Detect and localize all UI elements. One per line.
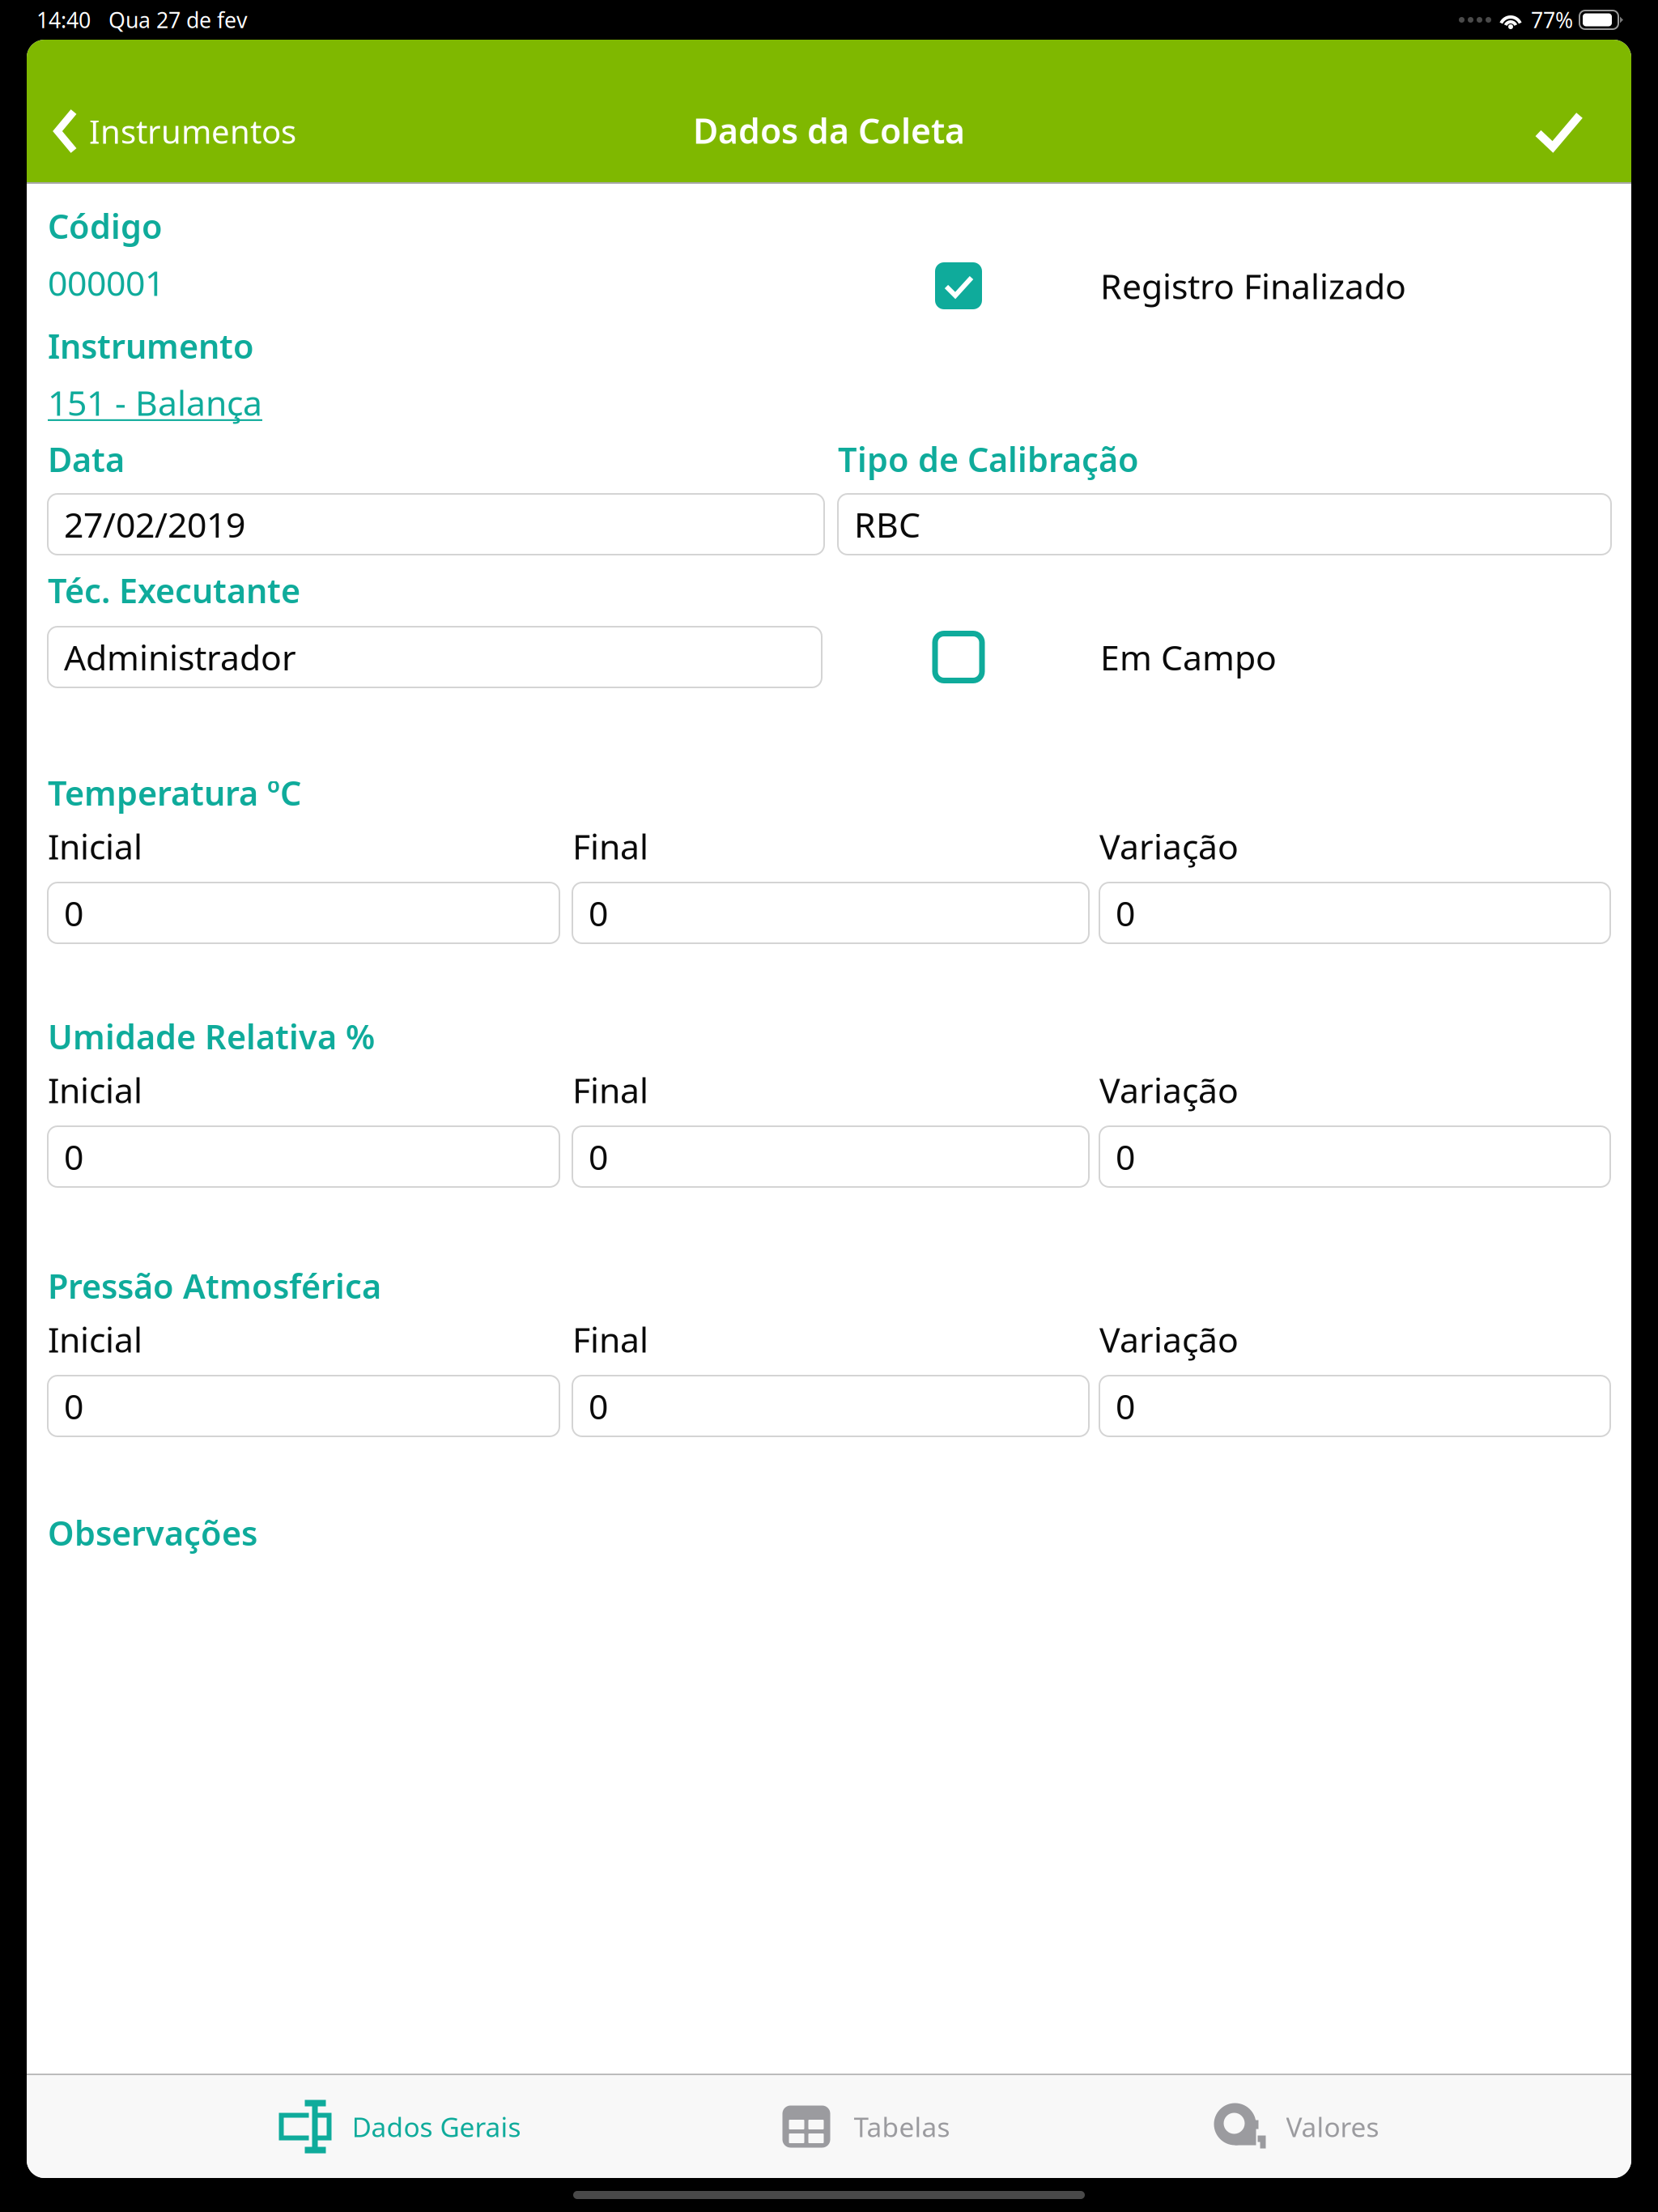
staticText: 0 bbox=[64, 1383, 83, 1429]
staticText: 14:40 bbox=[36, 6, 91, 34]
staticText: Variação bbox=[1099, 823, 1239, 869]
staticText: Inicial bbox=[48, 823, 142, 869]
staticText: Tipo de Calibração bbox=[838, 437, 1139, 481]
staticText: Código bbox=[48, 204, 163, 248]
staticText: Instrumento bbox=[48, 324, 254, 368]
button[interactable]: Registro Finalizado bbox=[935, 262, 1610, 309]
staticText: 0 bbox=[64, 890, 83, 936]
button[interactable]: Salvar bbox=[1503, 110, 1631, 152]
staticText: Tabelas bbox=[854, 2109, 950, 2145]
staticText: Inicial bbox=[48, 1067, 142, 1113]
staticText: Em Campo bbox=[1100, 634, 1277, 680]
staticText: 0 bbox=[589, 890, 608, 936]
staticText: 151 - Balança bbox=[48, 379, 262, 425]
staticText: Pressão Atmosférica bbox=[48, 1264, 381, 1308]
button[interactable]: Tabelas bbox=[782, 2081, 950, 2172]
staticText: Inicial bbox=[48, 1316, 142, 1362]
staticText: Instrumentos bbox=[89, 110, 296, 153]
staticText: 77% bbox=[1531, 6, 1573, 34]
staticText: Umidade Relativa % bbox=[48, 1014, 375, 1059]
staticText: Administrador bbox=[64, 634, 296, 680]
staticText: Dados da Coleta bbox=[693, 107, 965, 153]
button[interactable]: Valores bbox=[1214, 2079, 1379, 2174]
staticText: Variação bbox=[1099, 1067, 1239, 1113]
staticText: Data bbox=[48, 437, 125, 481]
staticText: Final bbox=[572, 1316, 648, 1362]
staticText: 27/02/2019 bbox=[64, 501, 245, 547]
staticText: 0 bbox=[589, 1383, 608, 1429]
staticText: Téc. Executante bbox=[48, 568, 300, 613]
staticText: 0 bbox=[589, 1134, 608, 1180]
staticText: 0 bbox=[1116, 1134, 1135, 1180]
button[interactable]: 151 - Balança bbox=[48, 386, 262, 419]
staticText: Registro Finalizado bbox=[1100, 263, 1406, 309]
staticText: 000001 bbox=[48, 260, 164, 306]
staticText: RBC bbox=[854, 501, 920, 547]
staticText: Temperatura ºC bbox=[48, 770, 301, 815]
staticText: Variação bbox=[1099, 1316, 1239, 1362]
staticText: 0 bbox=[1116, 890, 1135, 936]
staticText: Final bbox=[572, 823, 648, 869]
staticText: Observações bbox=[48, 1511, 257, 1555]
button[interactable]: Em Campo bbox=[935, 627, 1610, 687]
staticText: 0 bbox=[64, 1134, 83, 1180]
staticText: Valores bbox=[1286, 2109, 1379, 2145]
button[interactable]: Dados Gerais bbox=[279, 2076, 521, 2178]
staticText: Dados Gerais bbox=[352, 2109, 521, 2145]
staticText: 0 bbox=[1116, 1383, 1135, 1429]
staticText: Qua 27 de fev bbox=[108, 6, 248, 34]
button[interactable]: Instrumentos bbox=[27, 110, 311, 152]
staticText: Final bbox=[572, 1067, 648, 1113]
